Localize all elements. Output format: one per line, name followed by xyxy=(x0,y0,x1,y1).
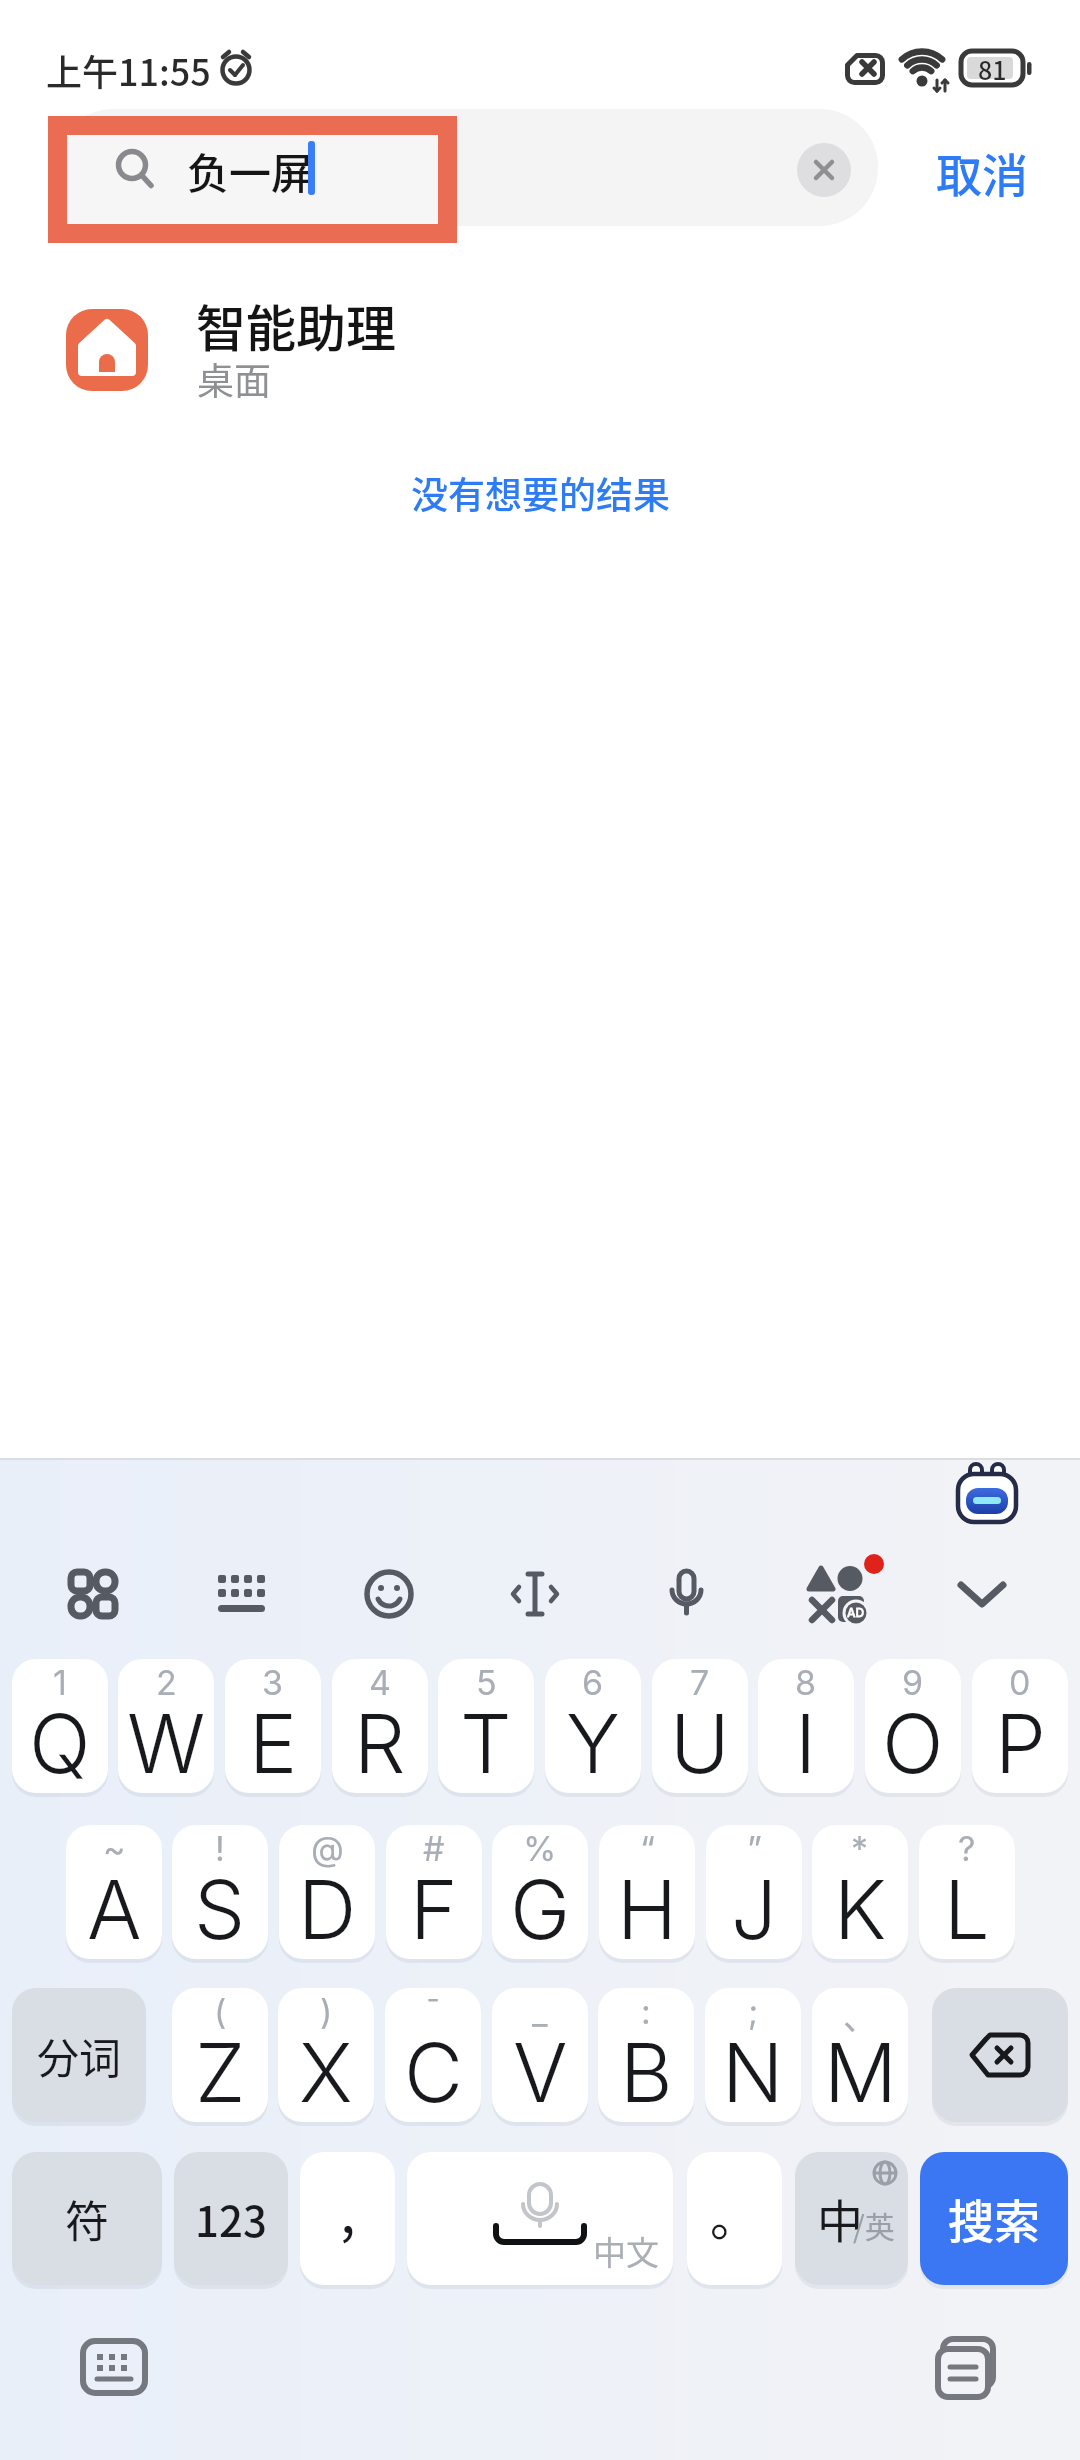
staticText: 4 xyxy=(369,1662,391,1703)
button[interactable]: 2 xyxy=(118,1659,214,1793)
button[interactable]: : xyxy=(598,1988,694,2122)
button[interactable] xyxy=(509,1568,561,1620)
button[interactable] xyxy=(55,109,878,226)
button[interactable]: 8 xyxy=(758,1659,854,1793)
staticText: H xyxy=(617,1861,677,1959)
button[interactable]: 中文 xyxy=(407,2152,673,2285)
staticText: K xyxy=(834,1861,887,1959)
staticText: “ xyxy=(640,1828,655,1869)
staticText: ; xyxy=(748,1991,759,2032)
button[interactable] xyxy=(0,290,1080,410)
button[interactable]: * xyxy=(812,1825,908,1959)
staticText: T xyxy=(460,1695,512,1793)
staticText: E xyxy=(249,1695,298,1793)
staticText: V xyxy=(513,2024,568,2122)
button[interactable]: 123 xyxy=(174,2152,288,2285)
button[interactable] xyxy=(956,1568,1008,1620)
staticText: 3 xyxy=(262,1662,284,1703)
staticText: 智能助理 xyxy=(196,289,396,361)
button[interactable]: 搜索 xyxy=(920,2152,1068,2285)
button[interactable]: 7 xyxy=(652,1659,748,1793)
staticText: 符 xyxy=(65,2187,109,2251)
button[interactable]: 、 xyxy=(812,1988,908,2122)
staticText: ? xyxy=(958,1828,976,1869)
staticText: 123 xyxy=(195,2188,267,2249)
button[interactable]: ( xyxy=(172,1988,268,2122)
button[interactable] xyxy=(215,1568,267,1620)
staticText: 5 xyxy=(476,1662,497,1703)
button[interactable] xyxy=(660,1568,712,1620)
button[interactable]: “ xyxy=(599,1825,695,1959)
button[interactable]: _ xyxy=(492,1988,588,2122)
staticText: F xyxy=(410,1861,458,1959)
button[interactable]: ˉ xyxy=(385,1988,481,2122)
staticText: 取消 xyxy=(936,139,1028,206)
button[interactable]: ! xyxy=(172,1825,268,1959)
staticText: ( xyxy=(214,1991,227,2032)
staticText: ~ xyxy=(103,1828,126,1869)
button[interactable] xyxy=(67,1568,119,1620)
staticText: G xyxy=(510,1861,571,1959)
button[interactable]: % xyxy=(492,1825,588,1959)
staticText: 中文 xyxy=(593,2227,659,2275)
button[interactable]: 5 xyxy=(438,1659,534,1793)
staticText: B xyxy=(620,2024,673,2122)
staticText: W xyxy=(127,1695,206,1793)
button[interactable]: # xyxy=(386,1825,482,1959)
staticText: ) xyxy=(320,1991,333,2032)
button[interactable]: 中 xyxy=(795,2152,908,2285)
staticText: 。 xyxy=(710,2180,759,2250)
staticText: 上午11:55 xyxy=(46,44,211,96)
button[interactable] xyxy=(797,143,851,197)
staticText: 81 xyxy=(978,51,1007,87)
staticText: 搜索 xyxy=(948,2185,1040,2252)
staticText: J xyxy=(731,1861,777,1959)
button[interactable]: , xyxy=(300,2152,395,2285)
button[interactable]: 没有想要的结果 xyxy=(411,466,670,520)
staticText: _ xyxy=(532,1991,548,2032)
staticText: 8 xyxy=(795,1662,817,1703)
button[interactable]: 分词 xyxy=(12,1988,146,2122)
button[interactable]: ; xyxy=(705,1988,801,2122)
staticText: C xyxy=(404,2024,463,2122)
button[interactable] xyxy=(363,1568,415,1620)
button[interactable] xyxy=(932,1988,1068,2122)
button[interactable]: 3 xyxy=(225,1659,321,1793)
button[interactable]: 。 xyxy=(687,2152,782,2285)
staticText: ” xyxy=(747,1828,762,1869)
staticText: A xyxy=(87,1861,142,1959)
button[interactable]: ~ xyxy=(66,1825,162,1959)
staticText: M xyxy=(824,2024,897,2122)
staticText: Q xyxy=(29,1695,91,1793)
staticText: AD xyxy=(847,1605,865,1620)
button[interactable]: 1 xyxy=(12,1659,108,1793)
staticText: P xyxy=(995,1695,1046,1793)
staticText: R xyxy=(354,1695,406,1793)
staticText: I xyxy=(795,1695,817,1793)
button[interactable] xyxy=(935,2336,1001,2398)
button[interactable]: @ xyxy=(279,1825,375,1959)
staticText: 、 xyxy=(843,1991,877,2040)
button[interactable]: 9 xyxy=(865,1659,961,1793)
staticText: : xyxy=(641,1991,651,2032)
staticText: Y xyxy=(566,1695,620,1793)
staticText: 2 xyxy=(156,1662,177,1703)
staticText: 分词 xyxy=(37,2025,122,2086)
button[interactable]: ) xyxy=(278,1988,374,2122)
button[interactable]: 6 xyxy=(545,1659,641,1793)
staticText: 6 xyxy=(582,1662,604,1703)
button[interactable]: 取消 xyxy=(936,139,1028,206)
staticText: S xyxy=(194,1861,246,1959)
button[interactable] xyxy=(800,1558,892,1630)
staticText: 桌面 xyxy=(197,352,271,406)
button[interactable]: 4 xyxy=(332,1659,428,1793)
staticText: 1 xyxy=(53,1662,67,1703)
button[interactable] xyxy=(80,2338,148,2396)
staticText: D xyxy=(298,1861,357,1959)
button[interactable]: 符 xyxy=(12,2152,162,2285)
button[interactable]: 0 xyxy=(972,1659,1068,1793)
button[interactable]: ” xyxy=(706,1825,802,1959)
staticText: # xyxy=(423,1828,445,1869)
button[interactable]: ? xyxy=(919,1825,1015,1959)
staticText: O xyxy=(882,1695,944,1793)
